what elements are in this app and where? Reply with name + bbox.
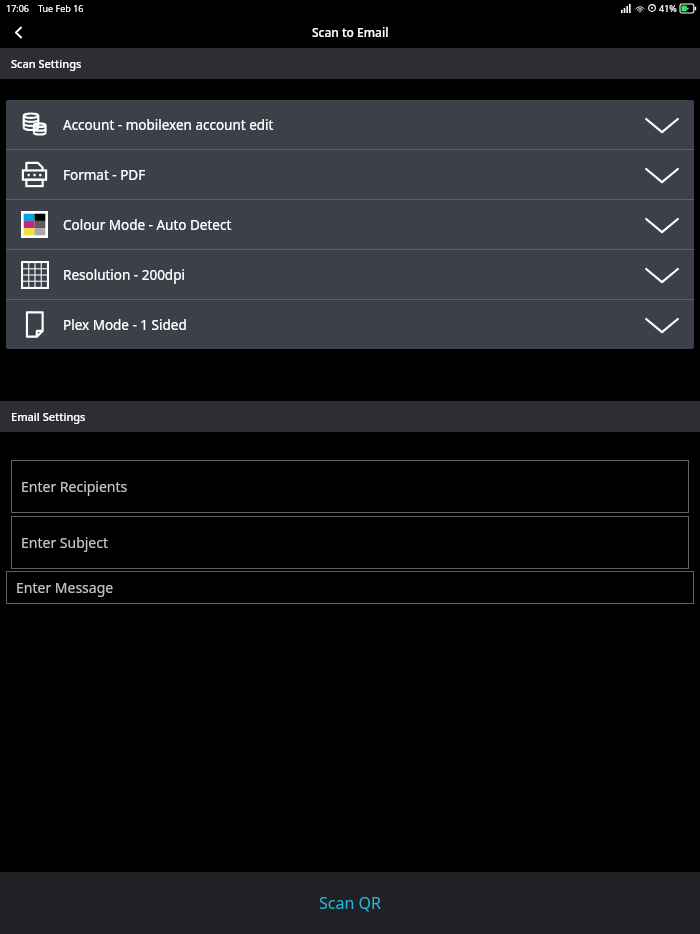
button[interactable]: Scan QR: [0, 872, 700, 934]
button[interactable]: Colour Mode - Auto Detect: [6, 200, 694, 249]
button[interactable]: Enter Recipients: [11, 460, 689, 513]
button[interactable]: Enter Message: [6, 571, 694, 604]
staticText: Enter Message: [16, 578, 114, 597]
staticText: Enter Subject: [21, 533, 109, 552]
button[interactable]: Enter Subject: [11, 516, 689, 569]
staticText: 41%: [659, 2, 677, 14]
staticText: 17:06: [6, 2, 30, 14]
staticText: Enter Recipients: [21, 477, 128, 496]
staticText: Scan QR: [319, 892, 381, 914]
button[interactable]: Format - PDF: [6, 150, 694, 199]
staticText: Tue Feb 16: [38, 2, 84, 14]
button[interactable]: Resolution - 200dpi: [6, 250, 694, 299]
staticText: Account - mobilexen account edit: [63, 116, 644, 134]
button[interactable]: Account - mobilexen account edit: [6, 100, 694, 149]
button[interactable]: Back: [0, 16, 36, 48]
staticText: Scan to Email: [312, 24, 389, 40]
staticText: Colour Mode - Auto Detect: [63, 216, 644, 234]
staticText: Resolution - 200dpi: [63, 266, 644, 284]
staticText: Format - PDF: [63, 166, 644, 184]
staticText: Email Settings: [11, 409, 86, 424]
staticText: Plex Mode - 1 Sided: [63, 316, 644, 334]
staticText: Scan Settings: [11, 56, 82, 71]
button[interactable]: Plex Mode - 1 Sided: [6, 300, 694, 349]
